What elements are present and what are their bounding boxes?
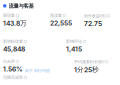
staticText: 点击率 bbox=[3, 59, 15, 64]
staticText: 1,415 bbox=[66, 45, 82, 53]
staticText: 新增评论 bbox=[66, 39, 82, 44]
staticText: 展现量 bbox=[3, 13, 15, 18]
staticText: 平均观看时长(秒) bbox=[74, 59, 104, 64]
staticText: 新增粉丝量 bbox=[3, 39, 23, 44]
staticText: 流量与客基 bbox=[8, 2, 33, 9]
staticText: 高于 同行均值 bbox=[25, 68, 50, 73]
staticText: 完播完成率 bbox=[3, 75, 23, 80]
staticText: 创作收益(元) bbox=[84, 13, 106, 18]
staticText: 22,555 bbox=[50, 19, 72, 27]
staticText: 阅读量 bbox=[50, 13, 62, 18]
staticText: 1分25秒 bbox=[74, 65, 99, 74]
staticText: 45,848 bbox=[3, 45, 25, 53]
button[interactable]: 流量与客基 bbox=[3, 2, 33, 9]
staticText: 143.8万 bbox=[3, 19, 27, 27]
staticText: 72.75 bbox=[84, 19, 102, 27]
staticText: 1.56% bbox=[3, 65, 23, 73]
